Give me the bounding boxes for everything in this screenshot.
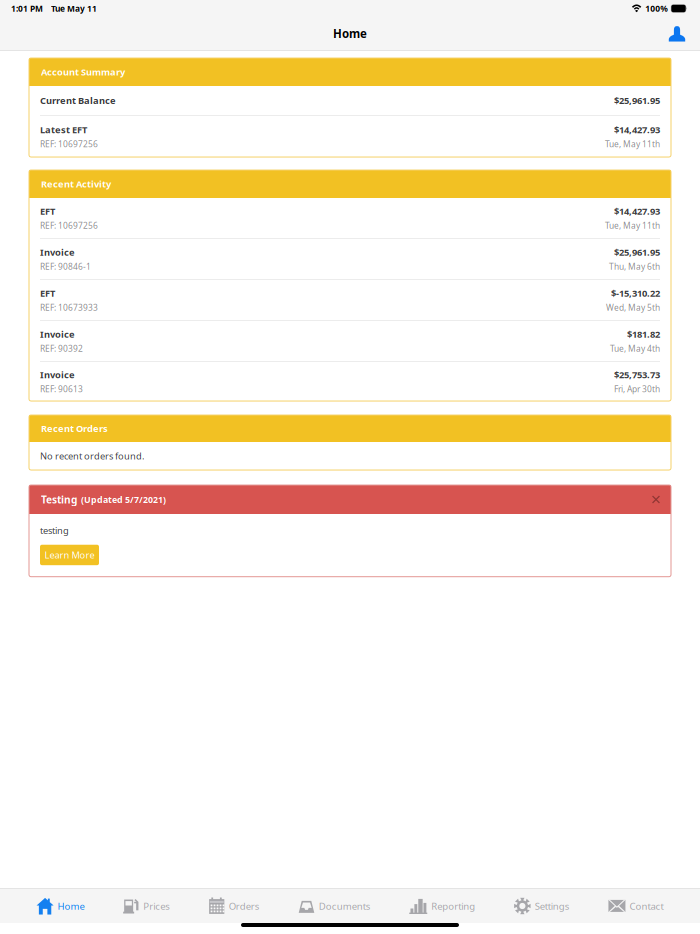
staticText: $14,427.93 [614,123,660,136]
staticText: EFT [40,287,55,299]
staticText: testing [40,524,69,537]
staticText: 100% [645,3,668,14]
staticText: Contact [629,899,663,913]
staticText: Wed, May 5th [606,302,660,313]
staticText: Account Summary [41,66,125,78]
button[interactable]: Dismiss [646,489,666,509]
button[interactable]: Prices [121,889,172,923]
staticText: Thu, May 6th [609,261,660,272]
button[interactable]: Settings [512,889,572,923]
staticText: REF: 90613 [40,383,83,395]
staticText: $14,427.93 [614,205,660,217]
staticText: Fri, Apr 30th [614,383,660,395]
staticText: $25,961.95 [614,94,660,107]
staticText: Testing [41,493,77,506]
button[interactable]: Reporting [407,889,477,923]
staticText: Current Balance [40,94,116,107]
staticText: Home [58,899,85,913]
staticText: (Updated 5/7/2021) [81,493,166,505]
staticText: No recent orders found. [40,450,145,462]
staticText: $-15,310.22 [611,287,660,299]
staticText: Learn More [44,549,94,561]
button[interactable]: Contact [606,889,665,923]
staticText: EFT [40,205,55,217]
staticText: Tue, May 11th [605,138,660,150]
staticText: Recent Orders [41,422,108,435]
staticText: Invoice [40,328,75,340]
staticText: Tue, May 4th [610,343,660,354]
staticText: Invoice [40,368,75,381]
staticText: Reporting [431,899,475,913]
staticText: Recent Activity [41,178,111,190]
button[interactable]: Account [662,18,692,48]
button[interactable]: Orders [207,889,262,923]
staticText: REF: 90392 [40,343,83,354]
staticText: 1:01 PM [11,3,43,14]
staticText: $25,753.73 [614,368,660,381]
staticText: $181.82 [627,328,660,340]
staticText: Prices [143,899,170,913]
staticText: Tue, May 11th [605,220,660,231]
staticText: REF: 10697256 [40,220,98,231]
staticText: REF: 90846-1 [40,261,91,272]
staticText: Home [333,26,367,41]
staticText: Invoice [40,246,75,258]
staticText: Tue May 11 [51,3,97,14]
button[interactable]: Documents [296,889,373,923]
staticText: REF: 10697256 [40,138,98,150]
button[interactable]: Home [35,889,87,923]
staticText: $25,961.95 [614,246,660,258]
staticText: Documents [319,899,371,913]
staticText: REF: 10673933 [40,302,98,313]
staticText: Orders [229,899,260,913]
staticText: Latest EFT [40,123,87,136]
button[interactable]: Learn More [40,545,99,565]
staticText: Settings [535,899,570,913]
